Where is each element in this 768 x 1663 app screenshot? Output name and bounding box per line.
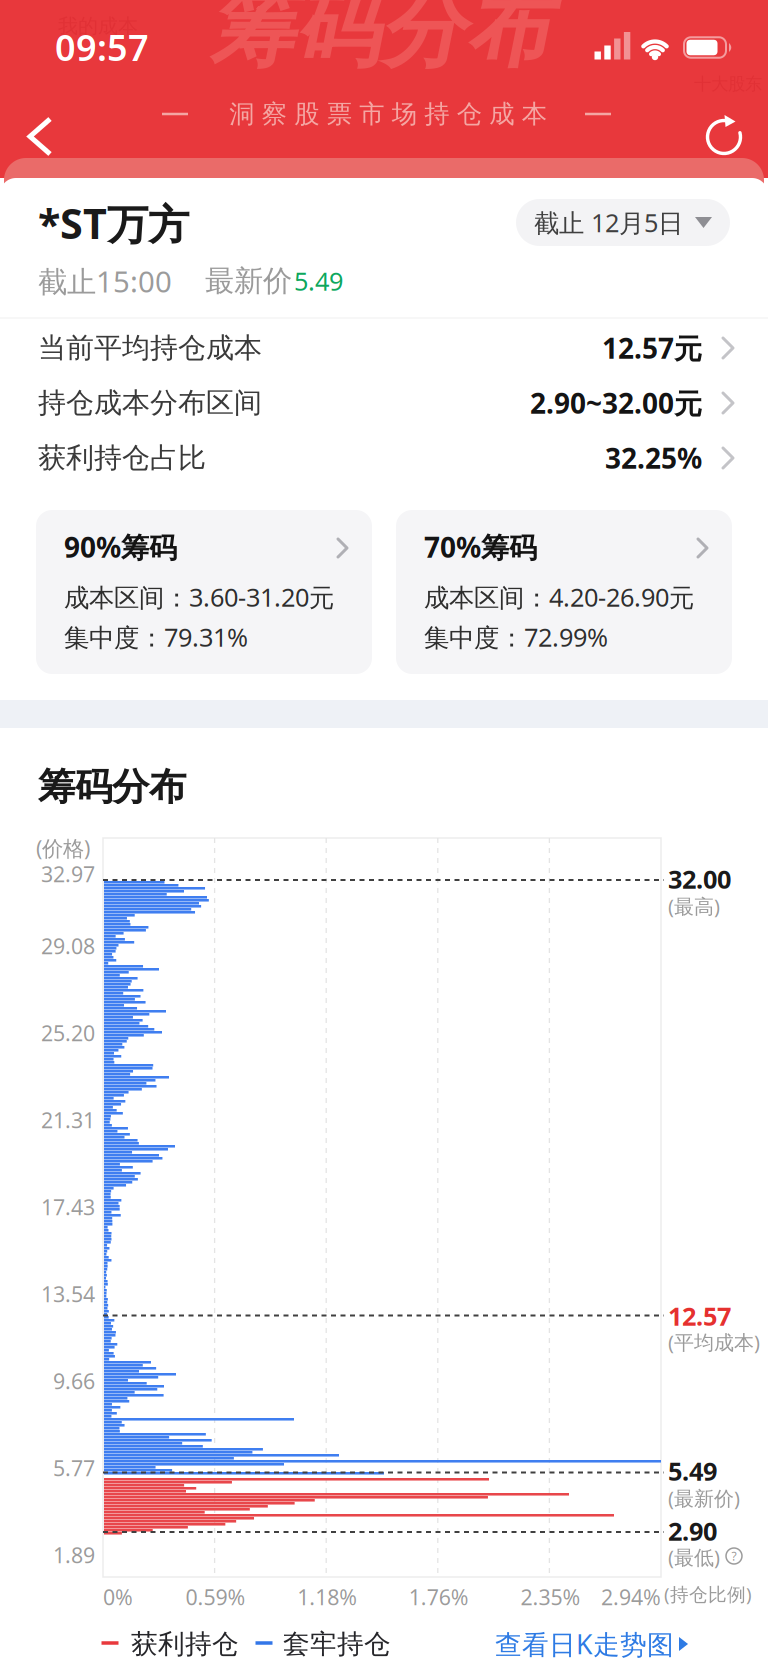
staticText: 最新价 (205, 263, 292, 299)
staticText: 2.90~32.00元 (530, 384, 702, 422)
staticText: 70%筹码 (424, 528, 537, 566)
staticText: 筹码分布 (38, 764, 186, 810)
staticText: 32.97 (41, 860, 95, 888)
staticText: 12.57 (668, 1299, 731, 1333)
staticText: 32.00 (668, 862, 731, 896)
staticText: 32.25% (605, 439, 702, 477)
button[interactable]: 持仓成本分布区间 (0, 0, 768, 1663)
staticText: (价格) (36, 834, 90, 862)
button[interactable]: 90%筹码 (0, 0, 768, 1663)
staticText: 0% (103, 1583, 133, 1611)
staticText: (最高) (668, 893, 720, 919)
staticText: 集中度：72.99% (424, 620, 608, 654)
staticText: 17.43 (41, 1193, 95, 1221)
button[interactable]: 截止 12月5日 (516, 199, 730, 246)
staticText: 获利持仓占比 (38, 441, 206, 475)
staticText: (最低) (668, 1544, 720, 1570)
staticText: 洞察股票市场持仓成本 (229, 98, 547, 129)
staticText: 5.49 (294, 264, 343, 298)
staticText: 查看日K走势图 (495, 1626, 674, 1662)
staticText: 成本区间：4.20-26.90元 (424, 580, 694, 614)
button[interactable]: 当前平均持仓成本 (0, 0, 768, 1663)
button[interactable]: Refresh (0, 0, 768, 1663)
staticText: 持仓成本分布区间 (38, 386, 262, 420)
staticText: 21.31 (41, 1106, 95, 1134)
button[interactable]: 查看日K走势图 (0, 0, 768, 1663)
staticText: 5.49 (668, 1454, 717, 1488)
staticText: 90%筹码 (64, 528, 177, 566)
staticText: 我的成本 (58, 14, 138, 38)
staticText: (最新价) (668, 1485, 740, 1511)
staticText: ? (731, 1548, 736, 1564)
staticText: 12.57元 (602, 329, 702, 367)
staticText: 9.66 (53, 1367, 95, 1395)
staticText: 13.54 (41, 1280, 95, 1308)
staticText: 成本区间：3.60-31.20元 (64, 580, 334, 614)
staticText: 截止 12月5日 (534, 206, 683, 239)
staticText: 2.35% (520, 1583, 580, 1611)
staticText: 1.89 (53, 1541, 95, 1569)
staticText: 09:57 (55, 23, 149, 71)
staticText: 29.08 (41, 932, 95, 960)
staticText: 套牢持仓 (283, 1628, 391, 1660)
staticText: (平均成本) (668, 1329, 760, 1355)
button[interactable]: 70%筹码 (0, 0, 768, 1663)
staticText: 集中度：79.31% (64, 620, 248, 654)
staticText: 0.59% (186, 1583, 246, 1611)
staticText: 1.76% (409, 1583, 469, 1611)
staticText: 5.77 (53, 1454, 95, 1482)
staticText: (持仓比例) (664, 1582, 752, 1606)
button[interactable]: Back (0, 0, 768, 1663)
staticText: 2.90 (668, 1514, 717, 1548)
staticText: 1.18% (297, 1583, 357, 1611)
staticText: 筹码分布 (210, 0, 550, 82)
staticText: *ST万方 (38, 195, 189, 250)
staticText: 获利持仓 (131, 1628, 239, 1660)
staticText: 25.20 (41, 1019, 95, 1047)
button[interactable]: 获利持仓占比 (0, 0, 768, 1663)
staticText: 当前平均持仓成本 (38, 331, 262, 365)
staticText: 截止15:00 (38, 261, 172, 300)
staticText: 2.94% (601, 1583, 661, 1611)
